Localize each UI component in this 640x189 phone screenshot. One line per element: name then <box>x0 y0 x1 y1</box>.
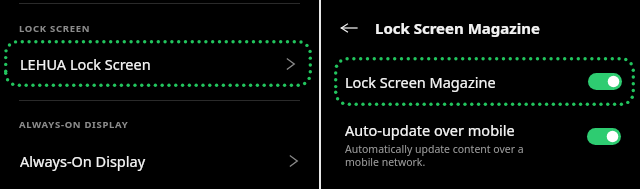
staticText: ALWAYS-ON DISPLAY <box>19 118 129 131</box>
staticText: Lock Screen Magazine <box>345 72 496 92</box>
button[interactable]: LEHUA Lock Screen <box>4 40 312 87</box>
staticText: Lock Screen Magazine <box>375 18 540 38</box>
staticText: Always-On Display <box>20 151 146 171</box>
button[interactable]: Always-On Display <box>0 139 319 183</box>
button[interactable]: Back <box>335 14 363 42</box>
staticText: Auto-update over mobile network <box>345 120 548 140</box>
staticText: LEHUA Lock Screen <box>20 54 151 74</box>
staticText: LOCK SCREEN <box>19 22 91 35</box>
staticText: Automatically update content over a mobi… <box>345 142 548 169</box>
button[interactable]: Lock Screen Magazine <box>334 57 635 106</box>
button[interactable]: Auto-update over mobile network <box>321 112 640 176</box>
